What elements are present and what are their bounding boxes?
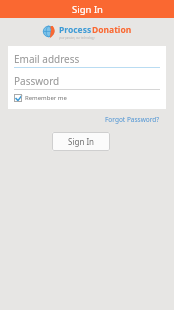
staticText: Donation xyxy=(92,24,132,36)
staticText: your passion, our technology xyxy=(59,36,95,40)
staticText: Password xyxy=(14,74,60,88)
staticText: Forgot Password? xyxy=(105,115,160,124)
button[interactable]: Email address xyxy=(14,50,160,68)
staticText: Process xyxy=(59,24,92,36)
button[interactable]: Password xyxy=(14,72,160,90)
staticText: Sign In xyxy=(72,3,103,16)
staticText: Sign In xyxy=(68,136,95,147)
button[interactable]: Forgot Password? xyxy=(103,113,162,126)
button[interactable]: Remember me xyxy=(14,93,67,103)
button[interactable]: Sign In xyxy=(52,132,110,151)
other: Process Donation logo xyxy=(43,25,57,39)
staticText: Email address xyxy=(14,52,80,66)
staticText: Remember me xyxy=(25,94,67,102)
